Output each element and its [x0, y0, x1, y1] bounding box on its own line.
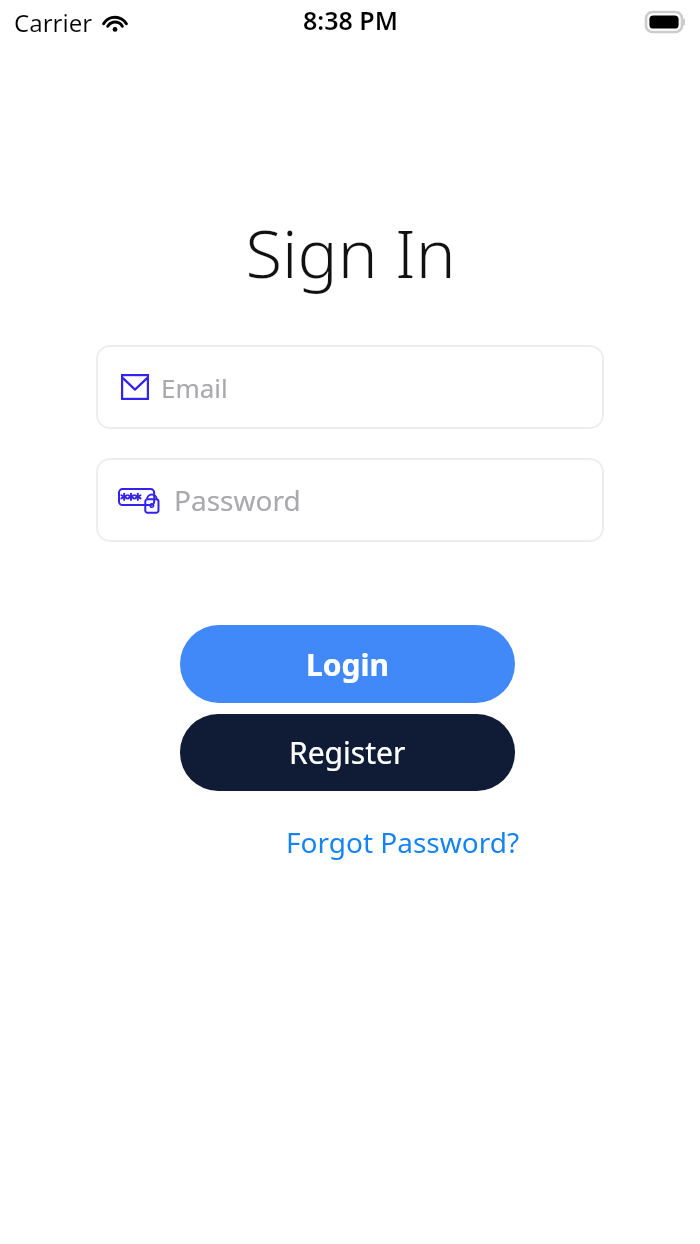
staticText: Login — [306, 644, 389, 685]
button[interactable]: Forgot Password? — [286, 820, 520, 864]
button[interactable]: Email — [96, 345, 604, 429]
other: Email — [121, 374, 149, 400]
other: Password — [118, 484, 162, 516]
button[interactable]: Register — [180, 714, 515, 791]
button[interactable]: Password — [96, 458, 604, 542]
staticText: Email — [161, 370, 228, 405]
staticText: Register — [289, 732, 406, 773]
staticText: Password — [174, 481, 301, 519]
staticText: 8:38 PM — [303, 3, 398, 37]
button[interactable]: Login — [180, 625, 515, 703]
staticText: Sign In — [245, 206, 456, 297]
staticText: Forgot Password? — [286, 823, 520, 861]
staticText: Carrier — [14, 6, 93, 39]
